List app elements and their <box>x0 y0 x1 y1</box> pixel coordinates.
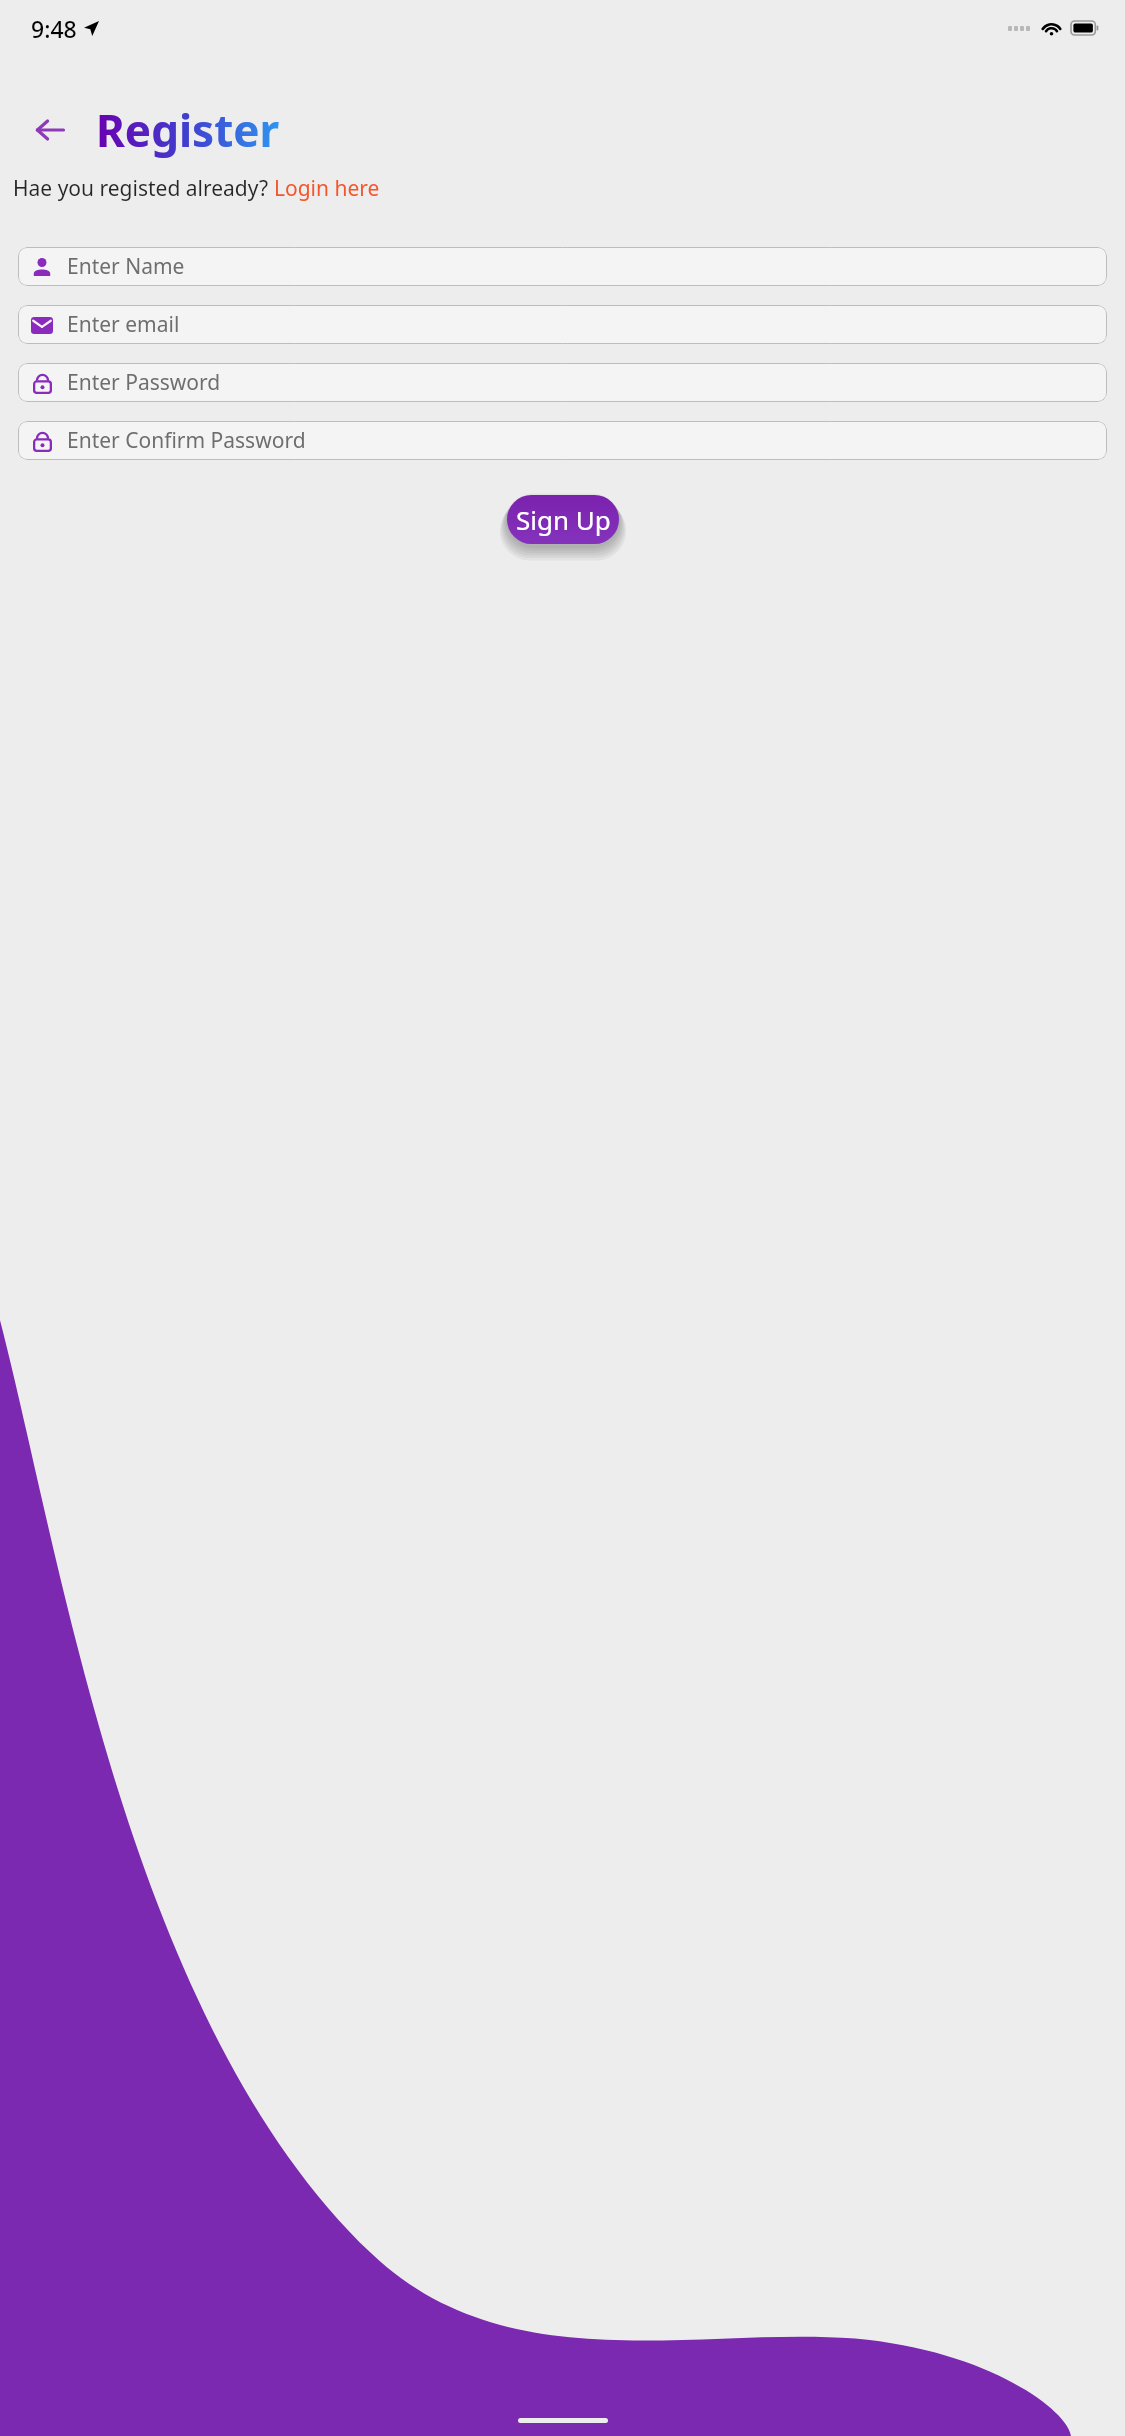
button[interactable]: Enter email <box>18 305 1107 344</box>
button[interactable]: Sign Up <box>507 495 619 544</box>
staticText: Register <box>96 100 280 160</box>
staticText: Enter Password <box>67 368 221 397</box>
staticText: Sign Up <box>516 502 611 537</box>
button[interactable]: Enter Name <box>18 247 1107 286</box>
staticText: Enter email <box>67 310 180 339</box>
button[interactable]: Login here <box>274 174 380 203</box>
staticText: Enter Confirm Password <box>67 426 306 455</box>
button[interactable]: Enter Confirm Password <box>18 421 1107 460</box>
button[interactable]: Back <box>22 102 78 158</box>
staticText: Enter Name <box>67 252 185 281</box>
staticText: Login here <box>274 174 380 203</box>
staticText: 9:48 <box>31 13 77 44</box>
staticText: Hae you registed already? <box>13 174 274 203</box>
button[interactable]: Enter Password <box>18 363 1107 402</box>
